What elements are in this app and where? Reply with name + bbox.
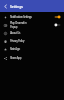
button[interactable]: Notification Settings <box>0 13 64 21</box>
staticText: Popup <box>10 25 18 29</box>
staticText: Share App <box>10 56 60 60</box>
button[interactable]: Privacy Policy <box>0 37 64 45</box>
button[interactable]: Share App <box>0 54 64 62</box>
staticText: About Us <box>10 31 60 35</box>
staticText: Privacy Policy <box>10 39 60 43</box>
button[interactable]: Play Channel in <box>0 21 64 29</box>
button[interactable]: Rate App <box>0 45 64 53</box>
button[interactable]: Back <box>0 0 10 12</box>
staticText: Notification Settings <box>10 15 53 19</box>
button[interactable]: Toggle on <box>53 13 64 21</box>
staticText: Rate App <box>10 47 60 51</box>
staticText: Play Channel in <box>10 21 27 25</box>
button[interactable]: About Us <box>0 29 64 37</box>
button[interactable]: Toggle off <box>53 21 64 29</box>
staticText: Settings <box>10 4 23 9</box>
